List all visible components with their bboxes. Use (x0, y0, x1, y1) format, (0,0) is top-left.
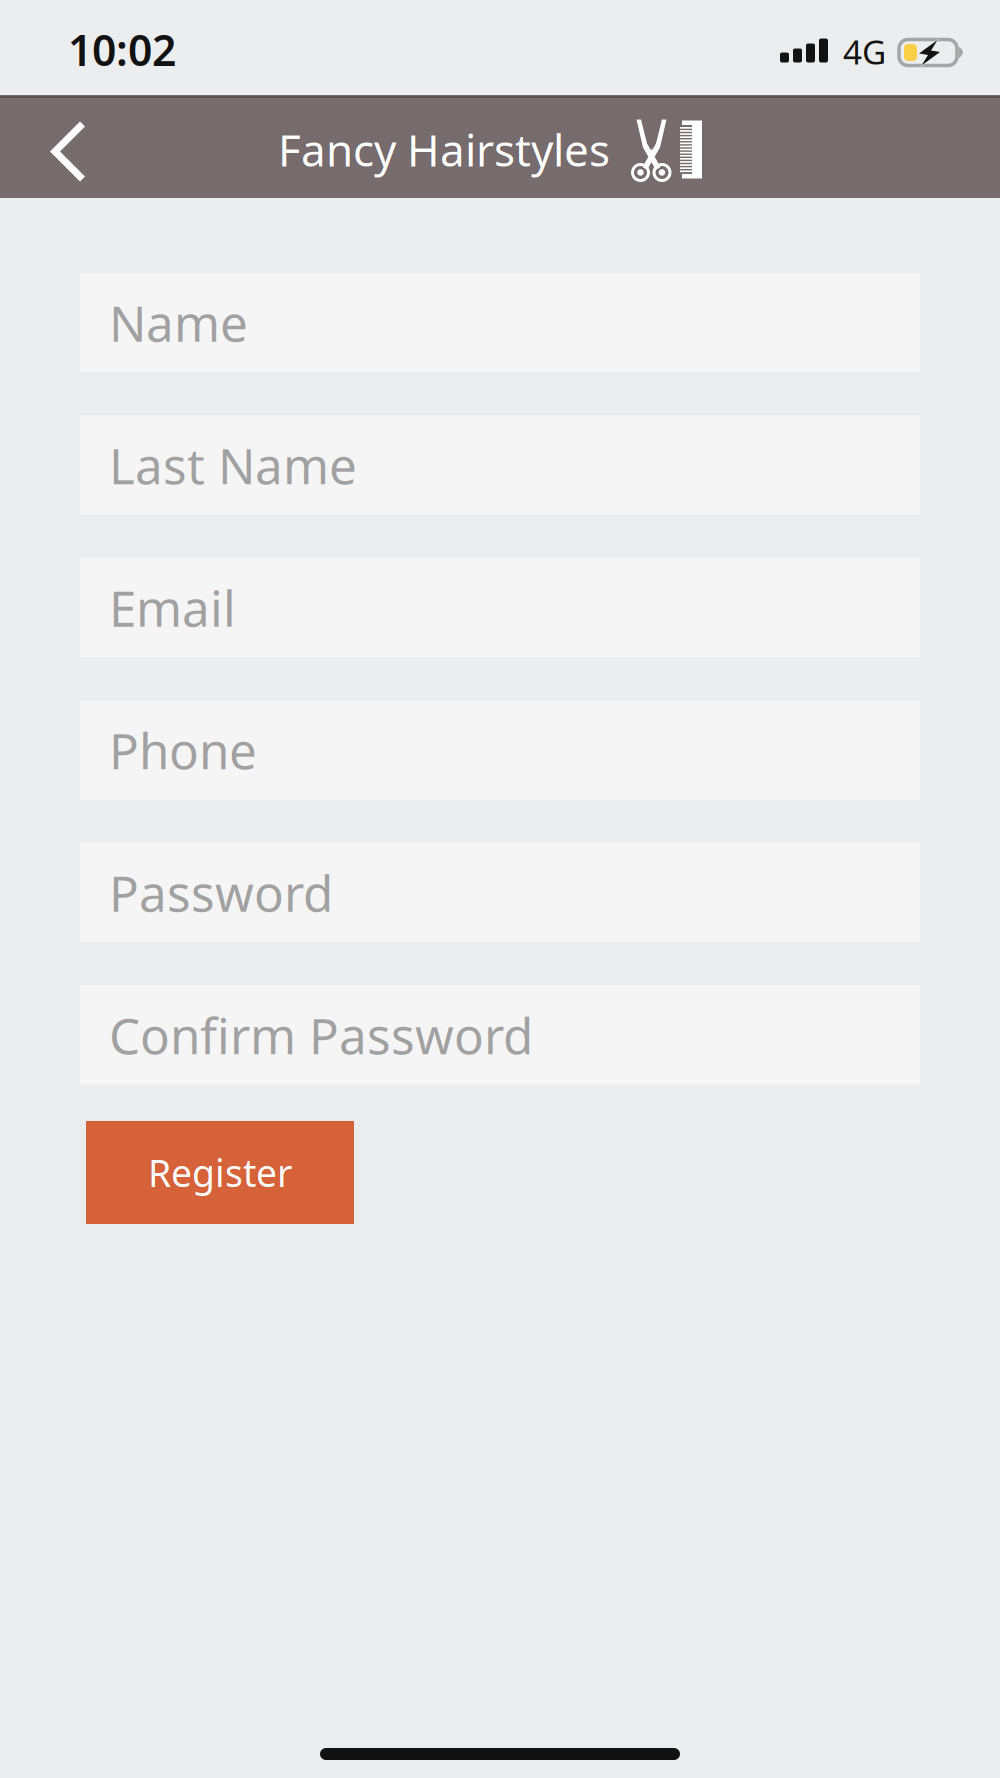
button[interactable]: Last Name (80, 415, 920, 514)
staticText: Confirm Password (109, 1002, 533, 1068)
staticText: Last Name (109, 432, 357, 498)
staticText: Email (109, 575, 236, 640)
button[interactable]: Back (0, 95, 128, 198)
button[interactable]: Email (80, 558, 920, 657)
button[interactable]: Name (80, 273, 920, 372)
staticText: Register (148, 1148, 292, 1197)
staticText: 10:02 (68, 21, 176, 78)
button[interactable]: Password (80, 843, 920, 942)
button[interactable]: Confirm Password (80, 985, 920, 1084)
staticText: Fancy Hairstyles (278, 120, 610, 179)
staticText: Name (109, 290, 248, 355)
button[interactable]: Register (86, 1121, 354, 1224)
button[interactable]: Phone (80, 700, 920, 799)
staticText: 4G (843, 29, 886, 74)
staticText: Phone (109, 717, 257, 783)
staticText: Password (109, 860, 333, 925)
